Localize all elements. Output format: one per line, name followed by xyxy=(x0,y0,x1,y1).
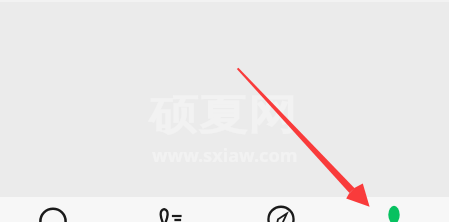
button[interactable]: Chats xyxy=(33,197,73,222)
button[interactable]: Contacts xyxy=(150,197,190,222)
button[interactable]: Me xyxy=(374,197,414,222)
staticText: 硕夏网 xyxy=(149,90,297,142)
button[interactable]: Discover xyxy=(261,197,301,222)
